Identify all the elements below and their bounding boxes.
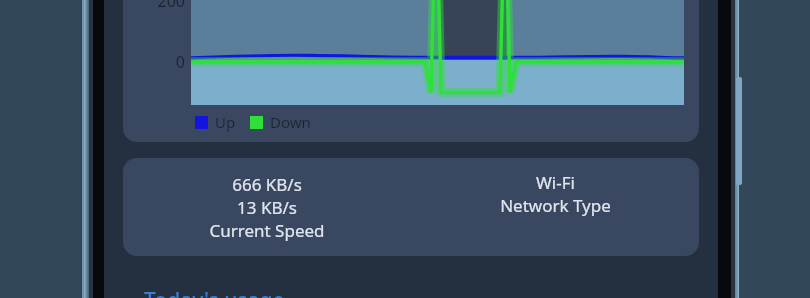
button[interactable]: Today's usage (144, 286, 285, 298)
staticText: Current Speed (209, 219, 325, 242)
staticText: Down (270, 112, 311, 132)
staticText: 200 (143, 0, 185, 12)
button[interactable]: 200 (123, 0, 699, 142)
button[interactable]: 666 KB/s (123, 158, 699, 256)
staticText: Up (215, 112, 236, 132)
staticText: 13 KB/s (237, 196, 297, 219)
staticText: Wi-Fi (536, 171, 575, 194)
other: Power button (736, 77, 742, 185)
staticText: 0 (637, 51, 683, 73)
staticText: Network Type (500, 194, 611, 217)
staticText: 0 (143, 51, 185, 73)
staticText: 666 KB/s (232, 173, 302, 196)
